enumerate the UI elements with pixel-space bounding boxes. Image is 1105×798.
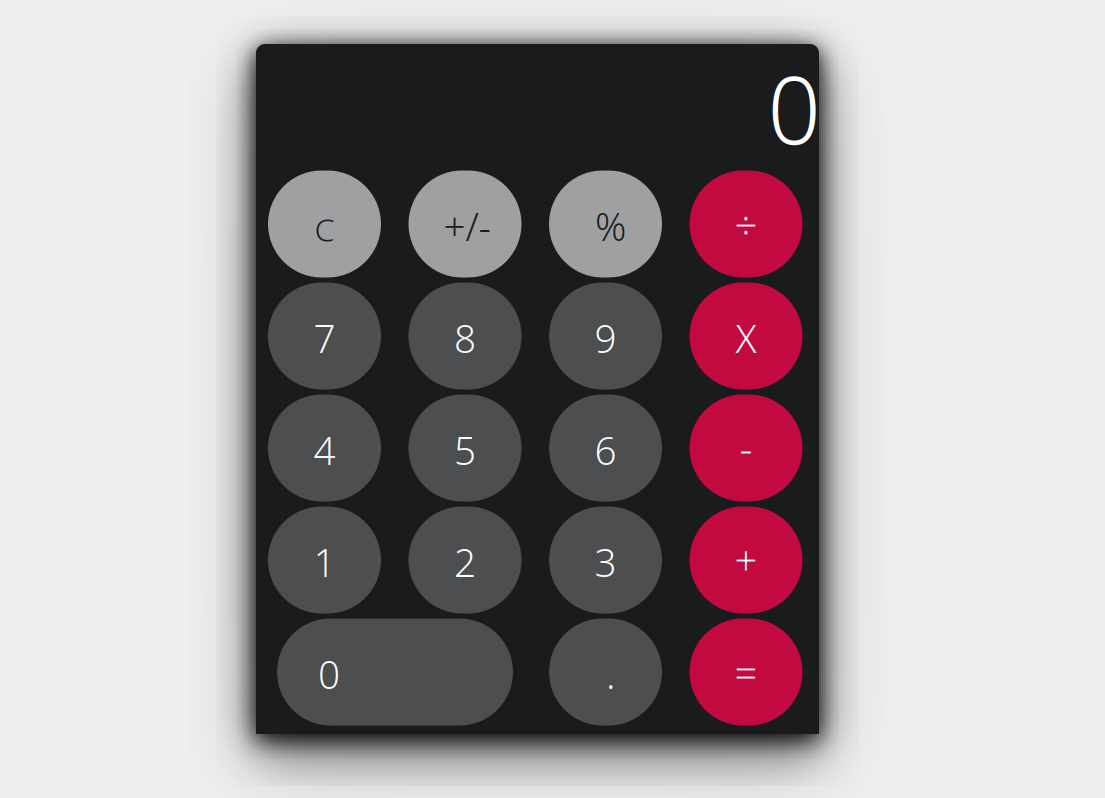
staticText: %	[595, 200, 626, 252]
staticText: C	[314, 208, 334, 250]
button[interactable]: 2	[408, 506, 521, 613]
staticText: X	[735, 312, 756, 364]
staticText: =	[734, 645, 757, 698]
button[interactable]: +	[689, 506, 802, 613]
staticText: 1	[313, 536, 335, 588]
staticText: 8	[454, 312, 476, 364]
button[interactable]: ÷	[689, 170, 802, 277]
staticText: 9	[594, 312, 616, 364]
button[interactable]: 8	[408, 282, 521, 389]
staticText: 6	[594, 424, 616, 476]
button[interactable]: %	[549, 170, 662, 277]
button[interactable]: 7	[268, 282, 381, 389]
button[interactable]: 1	[268, 506, 381, 613]
button[interactable]: .	[549, 618, 662, 725]
button[interactable]: +/-	[408, 170, 521, 277]
staticText: 2	[454, 536, 476, 588]
button[interactable]: C	[268, 170, 381, 277]
staticText: ÷	[734, 197, 757, 250]
button[interactable]: 0	[277, 618, 513, 725]
staticText: +	[734, 533, 757, 586]
button[interactable]: -	[689, 394, 802, 501]
staticText: 7	[313, 312, 335, 364]
button[interactable]: X	[689, 282, 802, 389]
staticText: -	[739, 421, 752, 474]
button[interactable]: 9	[549, 282, 662, 389]
button[interactable]: =	[689, 618, 802, 725]
button[interactable]: 4	[268, 394, 381, 501]
staticText: 4	[313, 424, 335, 476]
staticText: .	[606, 648, 615, 700]
staticText: +/-	[443, 200, 490, 252]
staticText: 0	[767, 46, 820, 170]
button[interactable]: 6	[549, 394, 662, 501]
staticText: 0	[318, 648, 340, 700]
button[interactable]: 5	[408, 394, 521, 501]
staticText: 5	[454, 424, 476, 476]
button[interactable]: 3	[549, 506, 662, 613]
staticText: 3	[594, 536, 616, 588]
